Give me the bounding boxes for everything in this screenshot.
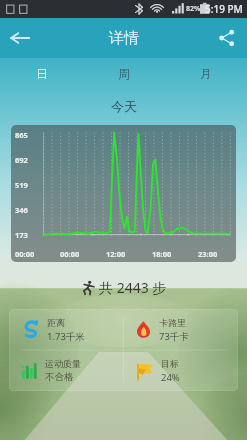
button[interactable]: Share [207,18,247,58]
staticText: 865 [15,130,28,140]
staticText: 73千卡 [159,330,189,343]
staticText: 月 [200,66,212,81]
staticText: 详情 [109,29,139,48]
button[interactable]: 运动质量 [9,350,123,391]
button[interactable]: 距离 [9,309,123,350]
staticText: 5:19 PM [205,2,243,16]
staticText: 距离 [47,317,65,328]
button[interactable]: Back [0,18,40,58]
button[interactable]: 目标 [123,350,238,391]
staticText: 运动质量 [45,358,81,369]
button[interactable]: 日 [0,58,83,88]
staticText: 519 [15,180,28,190]
staticText: 23:00 [198,249,231,259]
button[interactable]: 865 [11,125,236,262]
staticText: 今天 [111,98,137,114]
staticText: 共 2443 步 [99,278,167,297]
button[interactable]: 周 [83,58,165,88]
staticText: 周 [118,66,130,81]
staticText: 目标 [161,358,179,369]
staticText: 346 [15,205,28,215]
button[interactable]: 共 2443 步 [0,278,247,297]
staticText: 692 [15,155,28,165]
staticText: 不合格 [45,371,74,383]
staticText: 1.73千米 [47,330,85,343]
staticText: 00:00 [15,249,60,259]
button[interactable]: 卡路里 [123,309,238,350]
staticText: 82% [186,4,201,14]
staticText: 173 [15,230,28,240]
staticText: 12:00 [106,249,152,259]
staticText: 06:00 [60,249,106,259]
button[interactable]: 月 [165,58,247,88]
staticText: 18:00 [152,249,198,259]
staticText: 24% [161,371,180,384]
staticText: 卡路里 [159,317,186,328]
staticText: 日 [36,66,48,81]
